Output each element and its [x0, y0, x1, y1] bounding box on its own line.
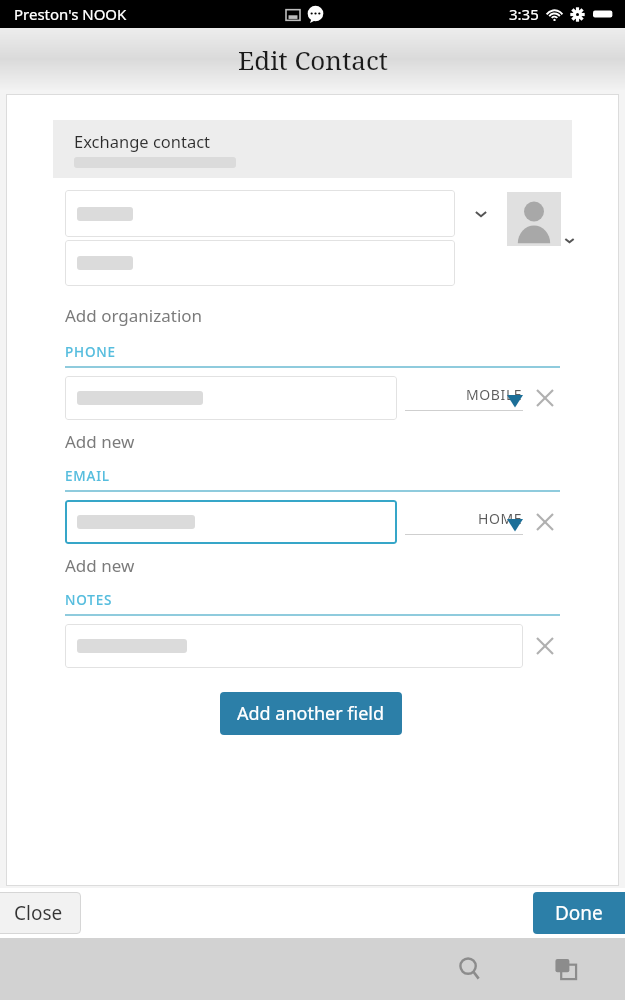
- staticText: MOBILE: [466, 385, 523, 404]
- button[interactable]: [65, 376, 397, 420]
- staticText: 3:35: [509, 4, 539, 24]
- staticText: Edit Contact: [238, 42, 388, 77]
- staticText: Preston's NOOK: [14, 4, 127, 24]
- button[interactable]: [65, 240, 455, 286]
- button[interactable]: Close: [0, 892, 81, 934]
- button[interactable]: Done: [533, 892, 625, 934]
- staticText: Exchange contact: [74, 130, 211, 152]
- button[interactable]: HOME: [405, 509, 523, 535]
- button[interactable]: Photo options: [559, 230, 579, 250]
- button[interactable]: MOBILE: [405, 385, 523, 411]
- button[interactable]: Remove field: [523, 500, 567, 544]
- staticText: EMAIL: [65, 467, 110, 485]
- button[interactable]: Add another field: [220, 692, 402, 735]
- button[interactable]: Add new: [65, 430, 135, 453]
- button[interactable]: [65, 190, 455, 237]
- staticText: PHONE: [65, 343, 116, 361]
- staticText: HOME: [478, 509, 523, 528]
- button[interactable]: Recent apps: [543, 946, 589, 992]
- button[interactable]: Exchange contact: [53, 120, 572, 178]
- staticText: Close: [14, 900, 63, 926]
- button[interactable]: Remove field: [523, 376, 567, 420]
- button[interactable]: Add organization: [65, 304, 203, 327]
- button[interactable]: Expand name: [455, 190, 507, 237]
- staticText: NOTES: [65, 591, 113, 609]
- button[interactable]: Add new: [65, 554, 135, 577]
- button[interactable]: Contact photo: [507, 192, 561, 246]
- button[interactable]: Search: [447, 946, 493, 992]
- staticText: Done: [555, 900, 603, 926]
- staticText: Add another field: [237, 701, 385, 726]
- button[interactable]: [65, 624, 523, 668]
- button[interactable]: Remove field: [523, 624, 567, 668]
- button[interactable]: [65, 500, 397, 544]
